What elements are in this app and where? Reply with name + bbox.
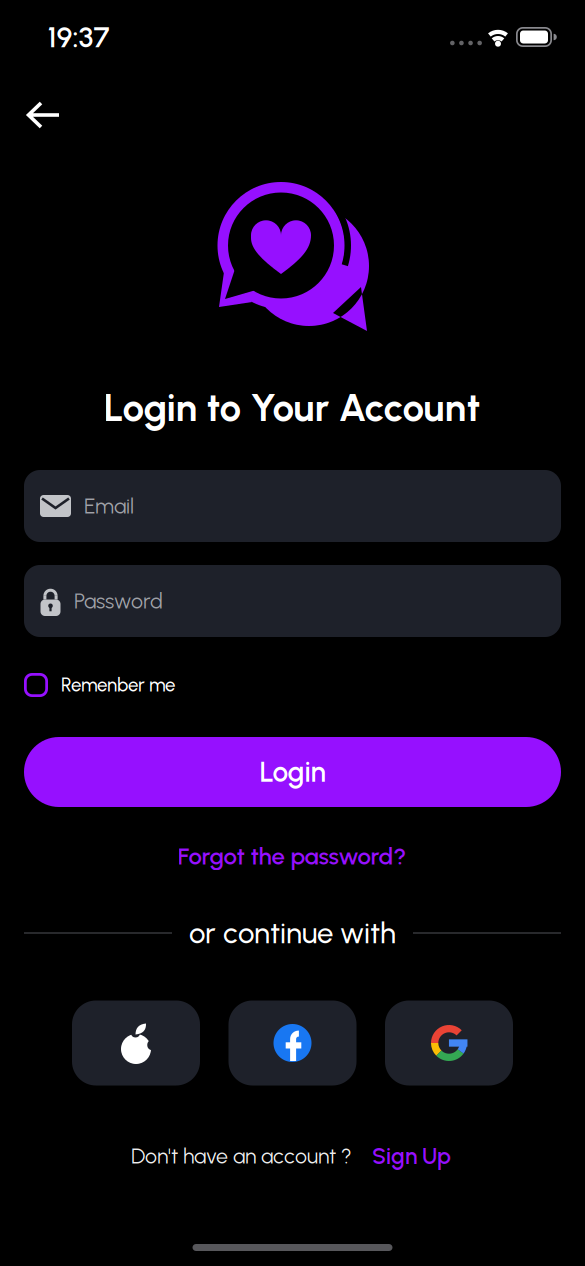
button[interactable]: Forgot the password? [177, 842, 406, 870]
button[interactable]: Continue with Apple [72, 1000, 200, 1085]
button[interactable]: Sign Up [372, 1143, 451, 1169]
staticText: Password [74, 588, 163, 613]
staticText: Sign Up [372, 1143, 451, 1169]
button[interactable]: Continue with Facebook [228, 1000, 356, 1085]
staticText: Login [259, 756, 325, 788]
staticText: Forgot the password? [177, 842, 406, 870]
staticText: Remenber me [61, 674, 175, 696]
button[interactable]: Back [22, 95, 66, 135]
button[interactable]: Login [24, 737, 561, 807]
staticText: or continue with [189, 916, 396, 950]
staticText: Login to Your Account [103, 385, 480, 430]
button[interactable]: Continue with Google [385, 1000, 513, 1085]
staticText: 19:37 [47, 20, 109, 54]
button[interactable]: Email [24, 470, 561, 542]
staticText: Email [84, 493, 134, 518]
button[interactable]: Remenber me [0, 673, 585, 697]
staticText: Don't have an account ? [131, 1143, 352, 1168]
button[interactable]: Password [24, 565, 561, 637]
